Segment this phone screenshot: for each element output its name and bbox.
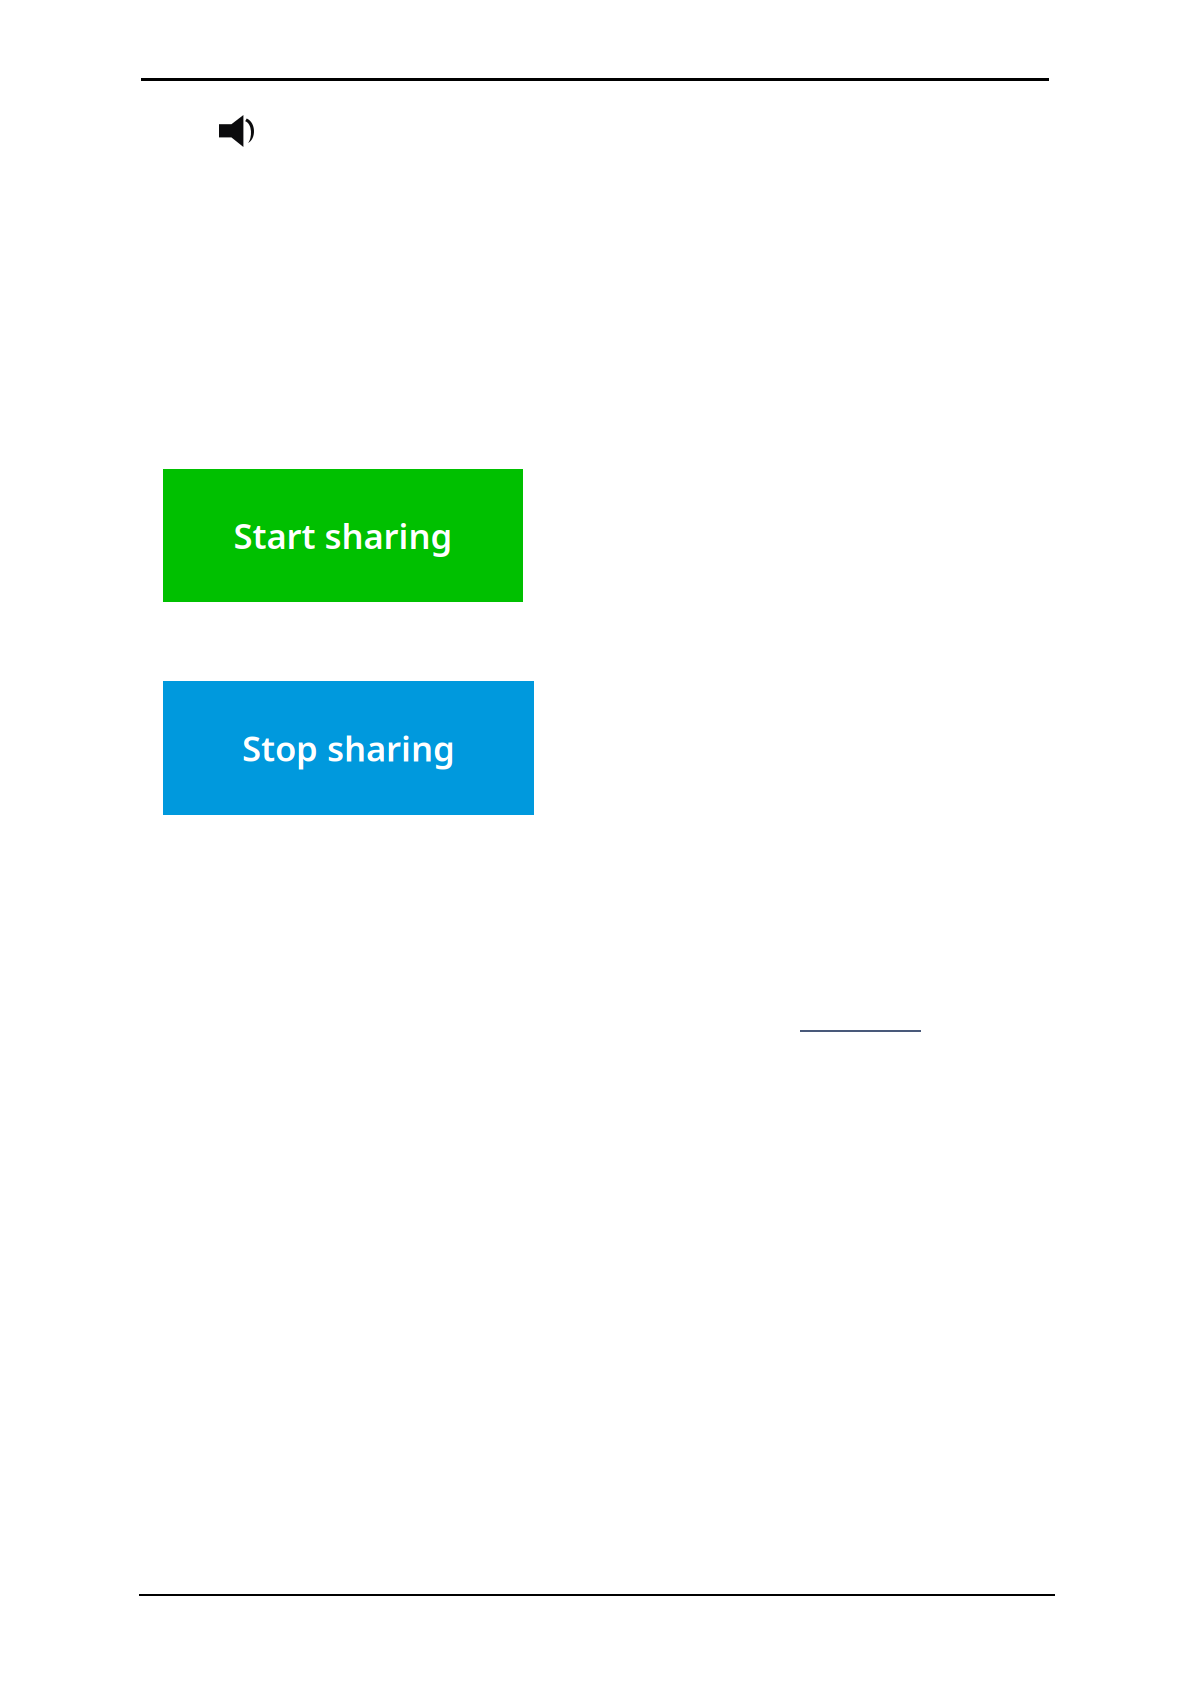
button[interactable]: Stop sharing [163, 681, 534, 815]
staticText: Start sharing [233, 512, 452, 558]
staticText: Stop sharing [242, 725, 455, 771]
button[interactable]: Link [800, 1007, 921, 1032]
button[interactable]: Start sharing [163, 469, 523, 602]
